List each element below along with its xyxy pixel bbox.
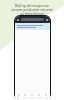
- button[interactable]: Search: [28, 91, 35, 100]
- button[interactable]: Favorites: [35, 91, 42, 100]
- button[interactable]: Search: [21, 18, 44, 21]
- button[interactable]: Menu: [17, 19, 19, 21]
- button[interactable]: [15, 23, 50, 30]
- button[interactable]: Categories: [22, 91, 28, 100]
- staticText: nieuwe producten via onze: [11, 7, 53, 11]
- button[interactable]: Account: [42, 91, 49, 100]
- button[interactable]: Home: [16, 91, 22, 100]
- staticText: pushmeldingen: [20, 11, 45, 15]
- staticText: Blijf op de hoogte van: [15, 3, 49, 7]
- button[interactable]: Shopping cart: [46, 19, 48, 21]
